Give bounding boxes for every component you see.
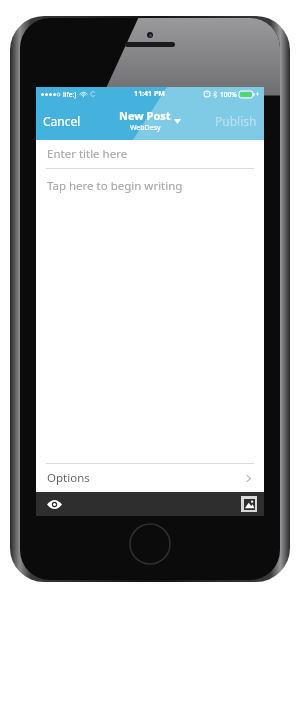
staticText: life:) (63, 90, 77, 99)
staticText: Cancel (43, 113, 81, 129)
button[interactable]: Publish (208, 106, 264, 136)
staticText: Options (47, 470, 90, 486)
staticText: Enter title here (47, 146, 128, 162)
staticText: Tap here to begin writing (47, 178, 183, 194)
button[interactable]: New Post (115, 106, 185, 135)
staticText: Publish (215, 113, 257, 129)
staticText: 11:41 PM (134, 89, 165, 99)
staticText: 100% (220, 90, 237, 99)
button[interactable]: Options (36, 464, 264, 492)
button[interactable]: Tap here to begin writing (36, 169, 264, 463)
button[interactable]: Add media (241, 496, 257, 512)
button[interactable]: Cancel (36, 106, 88, 136)
button[interactable]: Enter title here (36, 140, 264, 168)
staticText: WebDesy (130, 123, 161, 133)
button[interactable]: Preview (43, 494, 65, 514)
staticText: New Post (119, 108, 171, 123)
